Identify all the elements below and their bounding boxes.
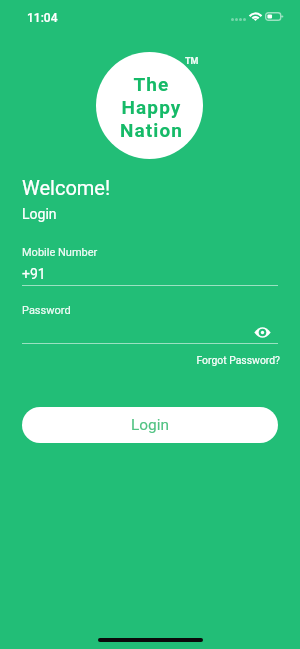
- staticText: Mobile Number: [22, 246, 98, 259]
- staticText: 11:04: [27, 11, 58, 25]
- staticText: The: [98, 73, 205, 95]
- staticText: Login: [131, 416, 169, 434]
- button[interactable]: Login: [22, 407, 278, 443]
- staticText: TM: [185, 56, 199, 67]
- staticText: Login: [22, 206, 57, 222]
- staticText: Happy: [98, 96, 205, 118]
- staticText: Password: [22, 304, 71, 317]
- button[interactable]: Forgot Password?: [22, 354, 280, 366]
- button[interactable]: Show password: [250, 320, 274, 345]
- staticText: +91: [22, 266, 46, 282]
- staticText: Nation: [98, 119, 205, 141]
- staticText: Welcome!: [22, 176, 111, 199]
